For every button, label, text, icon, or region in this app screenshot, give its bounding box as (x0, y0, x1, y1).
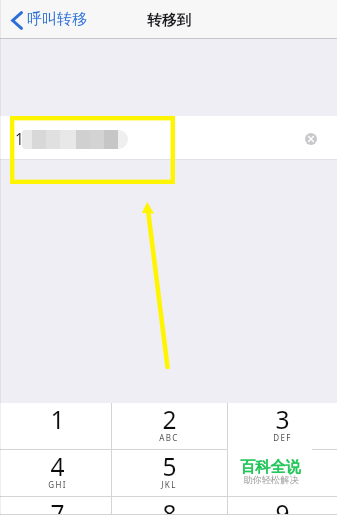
button[interactable]: 1 (0, 403, 111, 450)
button[interactable]: 1 (0, 116, 337, 159)
staticText: 3 (275, 403, 290, 436)
staticText: 8 (162, 497, 177, 515)
button[interactable]: 3 (227, 403, 337, 450)
button[interactable]: 8 (111, 497, 227, 515)
staticText: 9 (275, 497, 290, 515)
staticText: 1 (15, 128, 24, 149)
staticText: JKL (161, 479, 177, 490)
staticText: 4 (50, 450, 65, 483)
staticText: 5 (162, 450, 177, 483)
button[interactable]: 5 (111, 450, 227, 497)
staticText: 2 (162, 403, 177, 436)
button[interactable]: 百科全说 (227, 450, 337, 497)
button[interactable]: 2 (111, 403, 227, 450)
button[interactable]: 9 (227, 497, 337, 515)
staticText: 1 (50, 403, 65, 436)
staticText: 呼叫转移 (27, 10, 87, 29)
button[interactable]: Clear text (299, 127, 323, 151)
button[interactable]: Back to 呼叫转移 (11, 0, 87, 39)
staticText: ABC (159, 432, 179, 443)
staticText: GHI (48, 479, 67, 490)
staticText: 百科全说 (240, 457, 301, 476)
staticText: 7 (50, 497, 65, 515)
staticText: DEF (273, 432, 292, 443)
staticText: 助你轻松解决 (243, 474, 299, 486)
button[interactable]: 7 (0, 497, 111, 515)
staticText: 转移到 (147, 11, 191, 29)
button[interactable]: 4 (0, 450, 111, 497)
